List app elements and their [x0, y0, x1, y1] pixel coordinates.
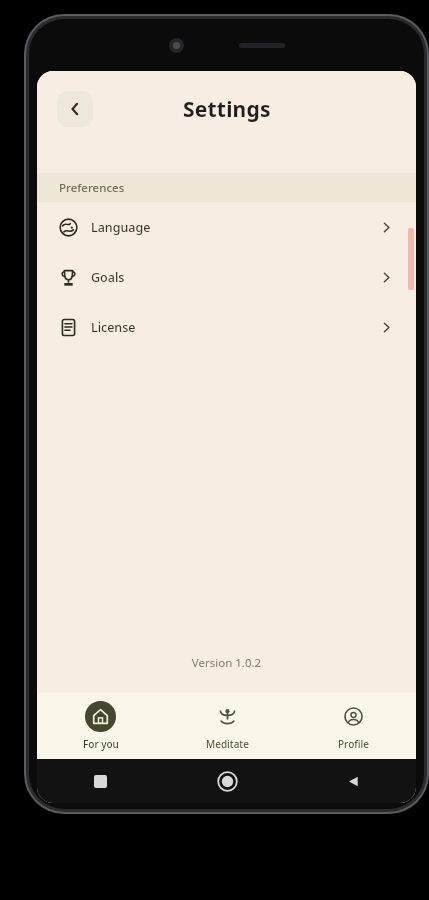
button[interactable]: License: [37, 302, 416, 352]
button[interactable]: Home: [217, 771, 238, 792]
button[interactable]: Meditate: [164, 693, 290, 759]
button[interactable]: Back: [346, 774, 361, 789]
button[interactable]: Recents: [94, 775, 107, 788]
staticText: Profile: [338, 737, 369, 751]
button[interactable]: Goals: [37, 252, 416, 302]
staticText: Language: [91, 219, 151, 236]
button[interactable]: Back: [57, 91, 93, 127]
staticText: License: [91, 319, 136, 336]
staticText: Meditate: [206, 737, 249, 751]
staticText: Preferences: [59, 180, 125, 196]
button[interactable]: Profile: [290, 693, 416, 759]
staticText: Version 1.0.2: [37, 655, 416, 671]
button[interactable]: Language: [37, 202, 416, 252]
button[interactable]: For you: [37, 693, 164, 759]
staticText: Settings: [183, 95, 271, 124]
staticText: Goals: [91, 269, 125, 286]
staticText: For you: [83, 737, 119, 751]
